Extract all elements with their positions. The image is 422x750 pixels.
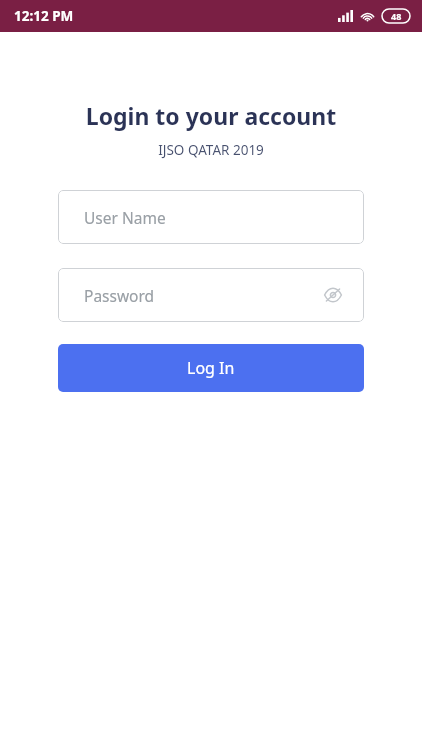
button[interactable]: Show password bbox=[320, 282, 346, 308]
button[interactable]: Password bbox=[58, 268, 364, 322]
button[interactable]: User Name bbox=[58, 190, 364, 244]
staticText: Log In bbox=[187, 357, 235, 379]
staticText: 48 bbox=[391, 10, 402, 22]
staticText: Password bbox=[84, 285, 155, 306]
staticText: User Name bbox=[84, 207, 166, 228]
staticText: Login to your account bbox=[0, 100, 422, 131]
staticText: 12:12 PM bbox=[14, 7, 74, 25]
staticText: IJSO QATAR 2019 bbox=[0, 141, 422, 159]
button[interactable]: Log In bbox=[58, 344, 364, 392]
